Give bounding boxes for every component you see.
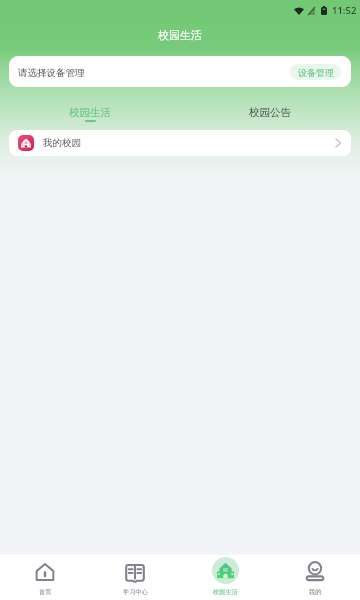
button[interactable]: Study Center <box>90 555 180 600</box>
button[interactable]: 校园生活 <box>180 555 270 600</box>
staticText: 我的校园 <box>43 137 81 149</box>
staticText: 11:52 <box>332 4 357 17</box>
other: Profile <box>304 561 326 583</box>
button[interactable]: 请选择设备管理 <box>9 56 351 87</box>
staticText: 学习中心 <box>123 588 148 596</box>
button[interactable]: Home <box>0 555 90 600</box>
staticText: 校园生活 <box>158 28 202 42</box>
other: Home <box>34 561 56 583</box>
staticText: 校园生活 <box>213 588 238 596</box>
other: Study Center <box>124 561 146 583</box>
button[interactable]: 我的校园 <box>9 130 351 156</box>
staticText: 请选择设备管理 <box>18 67 85 79</box>
button[interactable]: 设备管理 <box>290 64 341 80</box>
button[interactable]: 校园公告 <box>180 106 360 128</box>
staticText: 设备管理 <box>298 67 334 78</box>
staticText: 校园生活 <box>69 106 111 119</box>
button[interactable]: Profile <box>270 555 360 600</box>
staticText: 我的 <box>309 588 322 596</box>
staticText: 校园公告 <box>249 106 291 119</box>
staticText: 首页 <box>39 588 52 596</box>
button[interactable]: 校园生活 <box>0 106 180 128</box>
